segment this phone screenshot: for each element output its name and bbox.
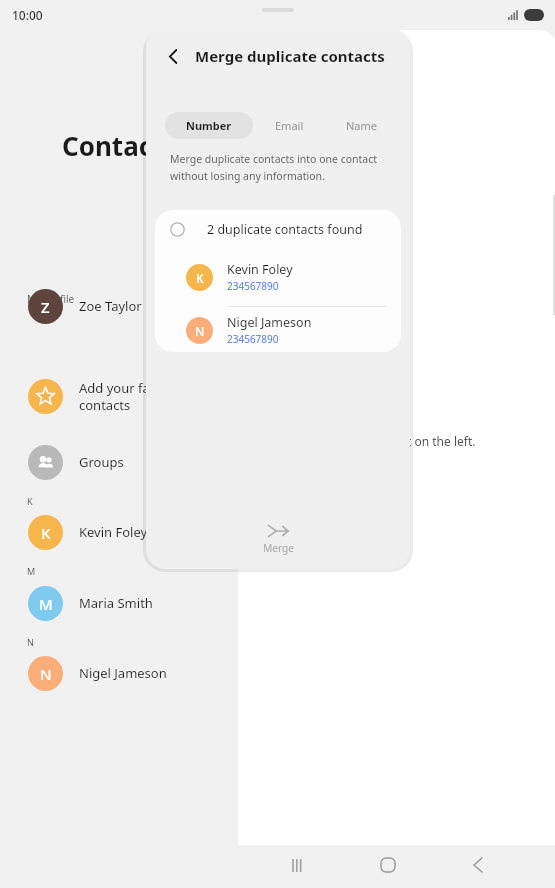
- button[interactable]: N: [155, 307, 401, 352]
- button[interactable]: Select all: [146, 204, 410, 234]
- button[interactable]: Z: [28, 286, 228, 326]
- staticText: Merge duplicate contacts: [195, 46, 385, 66]
- staticText: Merge duplicate contacts into one contac…: [170, 152, 378, 183]
- staticText: My profile: [27, 292, 75, 306]
- staticText: Z: [41, 297, 50, 317]
- button[interactable]: N: [28, 653, 228, 693]
- staticText: Email: [275, 118, 304, 133]
- staticText: Select a contact from the list on the le…: [252, 433, 476, 449]
- staticText: Merge: [263, 541, 294, 555]
- staticText: 234567890: [227, 279, 279, 293]
- staticText: N: [195, 323, 205, 339]
- staticText: M: [27, 565, 36, 577]
- staticText: Kevin Foley: [227, 261, 293, 278]
- staticText: Number: [186, 118, 232, 133]
- staticText: Nigel Jameson: [79, 664, 167, 682]
- button[interactable]: M: [28, 583, 228, 623]
- button[interactable]: Groups: [28, 441, 228, 483]
- button[interactable]: Add your favourite contacts: [28, 375, 228, 417]
- button[interactable]: Number: [165, 112, 253, 139]
- button[interactable]: K: [28, 512, 228, 552]
- staticText: Nigel Jameson: [227, 314, 312, 331]
- button[interactable]: Recents: [278, 845, 318, 885]
- staticText: K: [27, 495, 33, 507]
- staticText: K: [196, 270, 204, 286]
- staticText: K: [41, 523, 51, 543]
- button[interactable]: Home: [368, 845, 408, 885]
- staticText: Maria Smith: [79, 594, 153, 612]
- button[interactable]: K: [155, 254, 401, 300]
- staticText: Contacts: [62, 128, 177, 163]
- button[interactable]: Merge: [243, 524, 313, 555]
- button[interactable]: Email: [253, 112, 326, 139]
- staticText: Add your favourite contacts: [79, 379, 193, 414]
- staticText: 10:00: [12, 7, 43, 23]
- staticText: 234567890: [227, 332, 279, 346]
- button[interactable]: Name: [326, 112, 398, 139]
- button[interactable]: Back: [160, 43, 186, 69]
- button[interactable]: 2 duplicate contacts found: [155, 210, 401, 248]
- staticText: Name: [346, 118, 378, 133]
- button[interactable]: Back: [458, 845, 498, 885]
- staticText: M: [39, 594, 53, 614]
- staticText: N: [40, 664, 52, 684]
- staticText: 2 duplicate contacts found: [207, 221, 363, 238]
- staticText: Zoe Taylor: [79, 297, 142, 315]
- staticText: Groups: [79, 453, 124, 471]
- staticText: N: [27, 636, 34, 648]
- staticText: Kevin Foley: [79, 523, 148, 541]
- staticText: Select all: [207, 211, 259, 228]
